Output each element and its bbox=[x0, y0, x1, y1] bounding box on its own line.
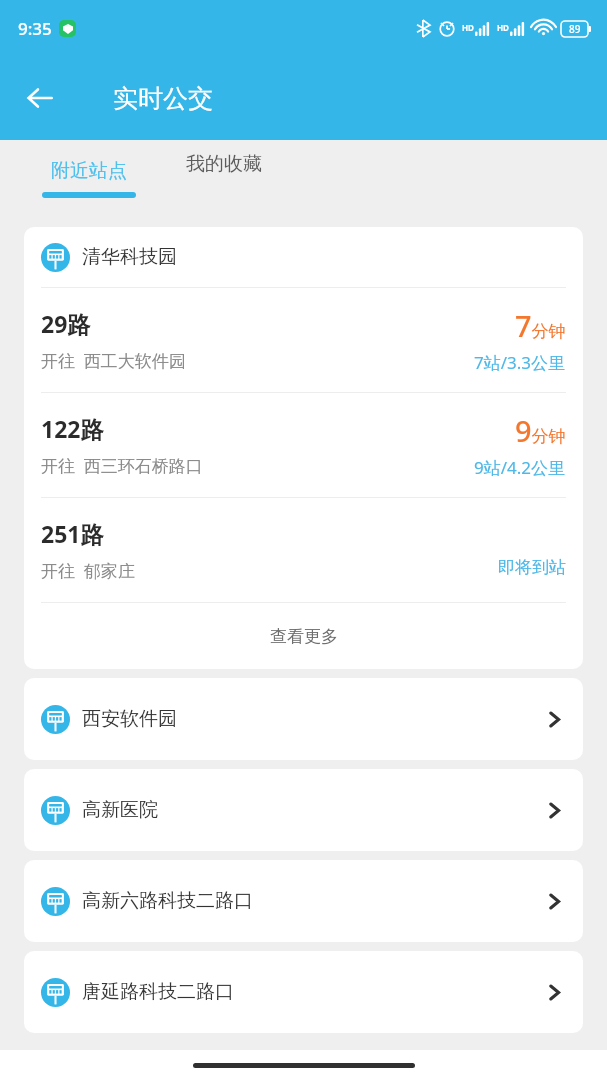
button[interactable]: 唐延路科技二路口 bbox=[24, 951, 583, 1033]
staticText: 开往 郁家庄 bbox=[41, 559, 135, 582]
staticText: 7分钟 bbox=[515, 306, 566, 345]
staticText: HD bbox=[497, 22, 509, 33]
button[interactable]: 查看更多 bbox=[24, 603, 583, 669]
button[interactable]: Back bbox=[16, 74, 64, 122]
staticText: 89 bbox=[569, 22, 581, 36]
button[interactable]: 122路 bbox=[24, 393, 583, 497]
button[interactable]: 29路 bbox=[24, 288, 583, 392]
staticText: 9:35 bbox=[18, 17, 52, 40]
staticText: 清华科技园 bbox=[82, 245, 177, 269]
staticText: 9站/4.2公里 bbox=[474, 456, 566, 479]
staticText: HD bbox=[462, 22, 474, 33]
staticText: 9分钟 bbox=[515, 411, 566, 450]
staticText: 251路 bbox=[41, 518, 104, 549]
staticText: 7站/3.3公里 bbox=[474, 351, 566, 374]
button[interactable]: 251路 bbox=[24, 498, 583, 602]
staticText: 我的收藏 bbox=[186, 152, 262, 176]
staticText: 查看更多 bbox=[270, 626, 338, 647]
staticText: 开往 西工大软件园 bbox=[41, 349, 186, 372]
staticText: 122路 bbox=[41, 413, 104, 444]
button[interactable]: 我的收藏 bbox=[168, 153, 280, 189]
staticText: 29路 bbox=[41, 308, 91, 339]
button[interactable]: 高新医院 bbox=[24, 769, 583, 851]
button[interactable]: 高新六路科技二路口 bbox=[24, 860, 583, 942]
staticText: 实时公交 bbox=[113, 83, 213, 114]
staticText: 即将到站 bbox=[498, 557, 566, 578]
button[interactable]: 附近站点 bbox=[24, 153, 154, 204]
button[interactable]: 清华科技园 bbox=[24, 227, 583, 287]
staticText: 附近站点 bbox=[51, 159, 127, 183]
button[interactable]: 西安软件园 bbox=[24, 678, 583, 760]
staticText: 开往 西三环石桥路口 bbox=[41, 454, 203, 477]
staticText: 高新六路科技二路口 bbox=[82, 889, 253, 913]
staticText: 唐延路科技二路口 bbox=[82, 980, 234, 1004]
staticText: 高新医院 bbox=[82, 798, 158, 822]
staticText: 西安软件园 bbox=[82, 707, 177, 731]
